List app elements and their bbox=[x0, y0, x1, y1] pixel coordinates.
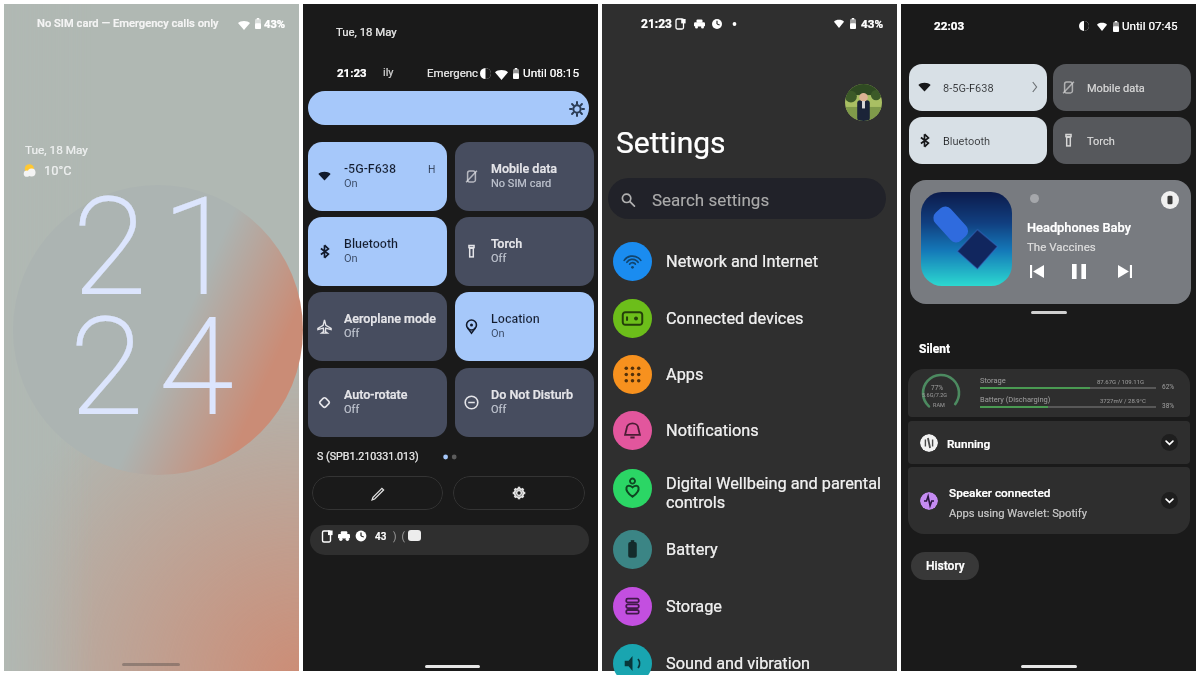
staticText: On bbox=[344, 252, 358, 265]
staticText: 87.67G / 109.11G bbox=[1097, 378, 1145, 385]
staticText: 38% bbox=[1162, 402, 1175, 410]
staticText: Tue, 18 May bbox=[336, 25, 397, 38]
staticText: S (SPB1.210331.013) bbox=[317, 450, 419, 463]
staticText: Until 07:45 bbox=[1122, 19, 1178, 33]
staticText: Tue, 18 May bbox=[25, 143, 88, 157]
button[interactable]: Torch bbox=[1053, 117, 1191, 164]
button[interactable]: Network and Internet bbox=[602, 233, 897, 289]
button[interactable]: Next track bbox=[1106, 256, 1143, 293]
staticText: On bbox=[344, 177, 358, 190]
staticText: Digital Wellbeing and parental controls bbox=[666, 474, 896, 512]
staticText: RAM bbox=[933, 402, 945, 408]
staticText: Until 08:15 bbox=[523, 66, 580, 80]
staticText: Sound and vibration bbox=[666, 654, 810, 673]
staticText: Torch bbox=[491, 236, 523, 251]
button[interactable]: Speaker connected bbox=[908, 467, 1190, 534]
button[interactable]: Edit tiles bbox=[312, 476, 443, 510]
staticText: Settings bbox=[616, 125, 726, 160]
staticText: Network and Internet bbox=[666, 252, 818, 271]
staticText: Running bbox=[947, 437, 991, 451]
button[interactable]: Account bbox=[845, 84, 882, 121]
staticText: -5G-F638 bbox=[344, 161, 397, 176]
staticText: ) ( bbox=[393, 531, 405, 543]
button[interactable]: Search settings bbox=[608, 178, 886, 219]
button[interactable]: Bluetooth bbox=[909, 117, 1047, 164]
button[interactable]: Connected devices bbox=[602, 290, 897, 346]
button[interactable]: Storage bbox=[602, 578, 897, 634]
staticText: 62% bbox=[1162, 383, 1175, 391]
staticText: Off bbox=[344, 327, 360, 340]
staticText: Do Not Disturb bbox=[491, 387, 574, 402]
staticText: Apps using Wavelet: Spotify bbox=[949, 507, 1088, 520]
staticText: 22:03 bbox=[934, 19, 965, 33]
staticText: 24 bbox=[70, 289, 249, 446]
staticText: Storage bbox=[980, 376, 1006, 385]
button[interactable]: Auto-rotate bbox=[308, 368, 447, 437]
staticText: 43% bbox=[264, 18, 286, 31]
staticText: Mobile data bbox=[491, 161, 558, 176]
button[interactable]: Sound and vibration bbox=[602, 635, 897, 675]
button[interactable]: Location bbox=[455, 292, 594, 361]
staticText: Storage bbox=[666, 597, 723, 616]
staticText: Torch bbox=[1087, 135, 1115, 148]
staticText: Silent bbox=[919, 342, 951, 356]
staticText: History bbox=[926, 559, 965, 573]
staticText: The Vaccines bbox=[1027, 240, 1096, 253]
button[interactable]: Digital Wellbeing and parental controls bbox=[602, 460, 897, 516]
staticText: 10°C bbox=[44, 163, 72, 178]
staticText: 43% bbox=[861, 17, 884, 31]
button[interactable]: Mobile data bbox=[455, 142, 594, 211]
staticText: No SIM card bbox=[491, 177, 552, 190]
staticText: Emergenc bbox=[427, 66, 478, 79]
button[interactable]: Previous track bbox=[1018, 256, 1055, 293]
button[interactable]: Bluetooth bbox=[308, 217, 447, 286]
staticText: Off bbox=[491, 403, 507, 416]
button[interactable]: Headphones Baby bbox=[910, 180, 1191, 304]
staticText: 21:23 bbox=[337, 66, 367, 79]
staticText: 8-5G-F638 bbox=[943, 82, 994, 95]
button[interactable]: Do Not Disturb bbox=[455, 368, 594, 437]
staticText: Bluetooth bbox=[943, 135, 991, 148]
staticText: Battery bbox=[666, 540, 718, 559]
staticText: Location bbox=[491, 311, 540, 326]
button[interactable]: Output device bbox=[1161, 191, 1179, 209]
staticText: Aeroplane mode bbox=[344, 311, 436, 326]
button[interactable]: 8-5G-F638 bbox=[909, 64, 1047, 111]
staticText: H bbox=[428, 163, 436, 175]
staticText: 3727mV / 28.9°C bbox=[1100, 397, 1146, 404]
staticText: Battery (Discharging) bbox=[980, 395, 1051, 404]
staticText: Search settings bbox=[652, 190, 770, 210]
button[interactable]: Expand bbox=[1161, 434, 1178, 451]
button[interactable]: Aeroplane mode bbox=[308, 292, 447, 361]
staticText: Speaker connected bbox=[949, 486, 1051, 500]
button[interactable]: Settings bbox=[453, 476, 585, 510]
staticText: Notifications bbox=[666, 421, 759, 440]
button[interactable]: Running bbox=[908, 421, 1190, 464]
button[interactable]: Pause bbox=[1060, 256, 1097, 293]
staticText: 21:23 bbox=[641, 17, 672, 31]
staticText: 21 bbox=[73, 169, 252, 326]
button[interactable]: Brightness bbox=[308, 91, 589, 125]
staticText: On bbox=[491, 327, 505, 340]
staticText: Mobile data bbox=[1087, 82, 1145, 95]
button[interactable]: Status icons bbox=[310, 525, 589, 555]
staticText: 77% bbox=[931, 384, 944, 392]
staticText: Headphones Baby bbox=[1027, 220, 1131, 235]
button[interactable]: Torch bbox=[455, 217, 594, 286]
staticText: 5.6G/7.2G bbox=[922, 392, 948, 398]
button[interactable]: Apps bbox=[602, 346, 897, 402]
button[interactable]: Notifications bbox=[602, 402, 897, 458]
staticText: Apps bbox=[666, 365, 704, 384]
button[interactable]: System stats bbox=[908, 369, 1190, 417]
button[interactable]: History bbox=[911, 552, 979, 580]
staticText: Auto-rotate bbox=[344, 387, 408, 402]
staticText: Off bbox=[491, 252, 507, 265]
button[interactable]: Battery bbox=[602, 521, 897, 577]
button[interactable]: -5G-F638 bbox=[308, 142, 447, 211]
staticText: Off bbox=[344, 403, 360, 416]
button[interactable]: Expand bbox=[1161, 492, 1178, 509]
button[interactable]: Mobile data bbox=[1053, 64, 1191, 111]
staticText: 24 bbox=[70, 289, 249, 446]
staticText: Connected devices bbox=[666, 309, 804, 328]
staticText: Bluetooth bbox=[344, 236, 399, 251]
